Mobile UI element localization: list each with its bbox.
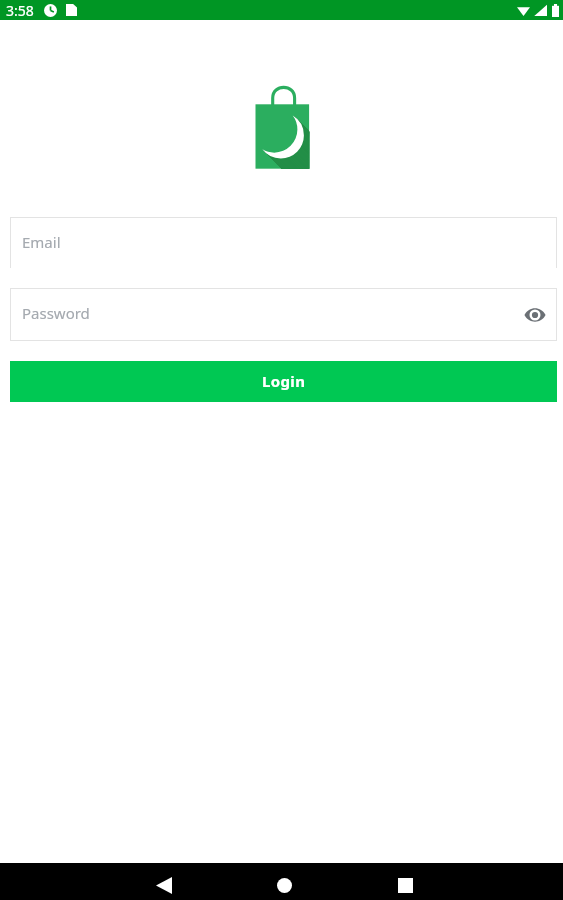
button[interactable]: Login <box>10 361 557 402</box>
button[interactable]: Show password <box>522 302 548 328</box>
button[interactable]: Recent apps <box>381 867 429 900</box>
button[interactable]: Home <box>260 867 308 900</box>
staticText: Password <box>22 303 90 323</box>
staticText: Login <box>262 371 306 391</box>
staticText: Email <box>22 232 61 252</box>
button[interactable]: Back <box>140 867 188 900</box>
staticText: 3:58 <box>6 1 34 20</box>
button[interactable]: Password <box>10 288 557 341</box>
button[interactable]: Email <box>10 217 557 268</box>
